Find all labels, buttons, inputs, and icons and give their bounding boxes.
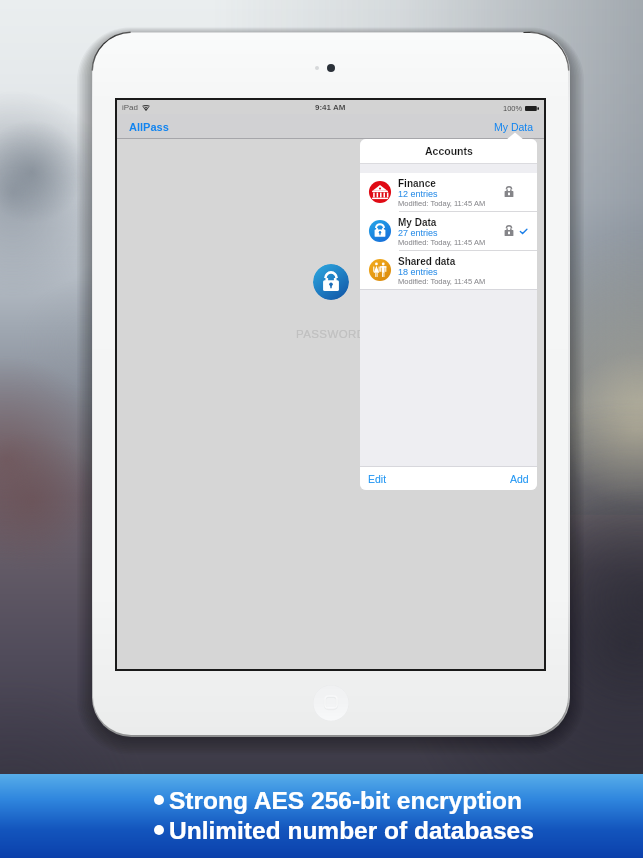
- staticText: AllPass: [129, 121, 169, 133]
- staticText: Add: [510, 473, 529, 485]
- staticText: Unlimited number of databases: [169, 817, 534, 844]
- staticText: Strong AES 256-bit encryption: [169, 787, 523, 814]
- staticText: Modified: Today, 11:45 AM: [398, 199, 486, 207]
- staticText: My Data: [494, 121, 534, 133]
- button[interactable]: Add: [504, 473, 537, 485]
- staticText: Modified: Today, 11:45 AM: [398, 277, 486, 285]
- staticText: 18 entries: [398, 267, 438, 277]
- staticText: Modified: Today, 11:45 AM: [398, 238, 486, 246]
- button[interactable]: Unlock database: [313, 264, 349, 300]
- staticText: Finance: [398, 178, 436, 189]
- staticText: Accounts: [425, 145, 473, 157]
- button[interactable]: My Data: [488, 121, 544, 133]
- staticText: Edit: [368, 473, 387, 485]
- button[interactable]: Home: [313, 685, 349, 721]
- staticText: My Data: [398, 217, 437, 228]
- staticText: 27 entries: [398, 228, 438, 238]
- button[interactable]: Edit: [360, 473, 393, 485]
- button[interactable]: Finance: [360, 173, 537, 211]
- staticText: iPad: [122, 103, 139, 112]
- staticText: Shared data: [398, 256, 456, 267]
- button[interactable]: AllPass: [117, 121, 175, 133]
- staticText: 9:41 AM: [315, 103, 346, 112]
- button[interactable]: My Data: [360, 212, 537, 250]
- staticText: PASSWORD: [296, 328, 366, 341]
- staticText: 100%: [503, 104, 523, 112]
- staticText: 12 entries: [398, 189, 438, 199]
- button[interactable]: Shared data: [360, 251, 537, 289]
